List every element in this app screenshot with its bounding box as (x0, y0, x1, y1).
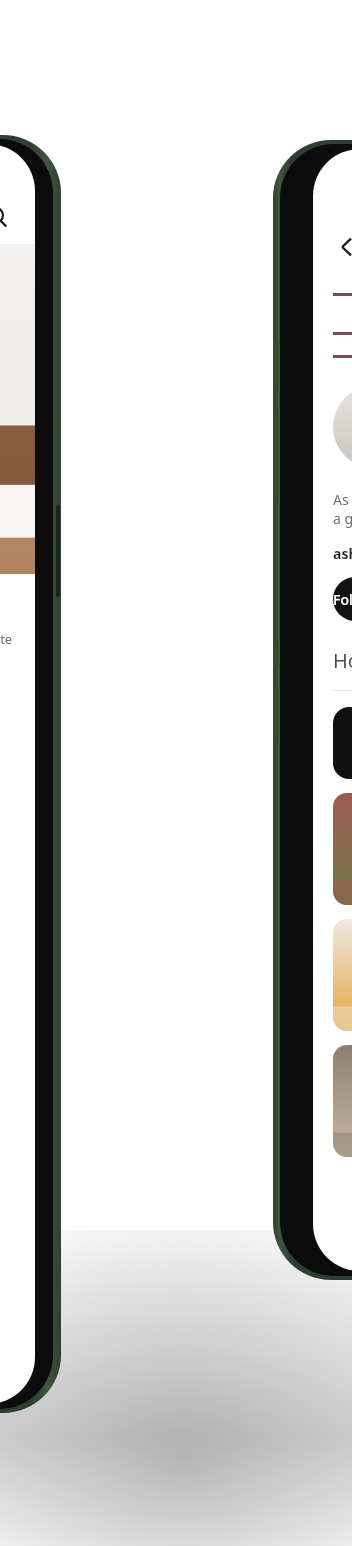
button[interactable]: Search (0, 197, 17, 237)
staticText: Warm wood tones paired with matte black … (0, 630, 15, 667)
staticText: ashleymoss.design (333, 544, 352, 563)
button[interactable]: Featured video (333, 707, 352, 779)
button[interactable]: Profile photo (333, 386, 352, 468)
staticText: a genuine voice. (333, 509, 352, 528)
button[interactable]: Back (327, 227, 352, 267)
button[interactable]: Portfolio photo (333, 919, 352, 1031)
button[interactable]: Portfolio photo (333, 793, 352, 905)
button[interactable]: Follow (333, 577, 352, 621)
button[interactable]: Portfolio photo (333, 1045, 352, 1157)
staticText: As a designer I help brands find (333, 490, 352, 509)
staticText: Follow (333, 590, 352, 609)
staticText: How I work (333, 647, 352, 674)
button[interactable] (0, 244, 35, 574)
